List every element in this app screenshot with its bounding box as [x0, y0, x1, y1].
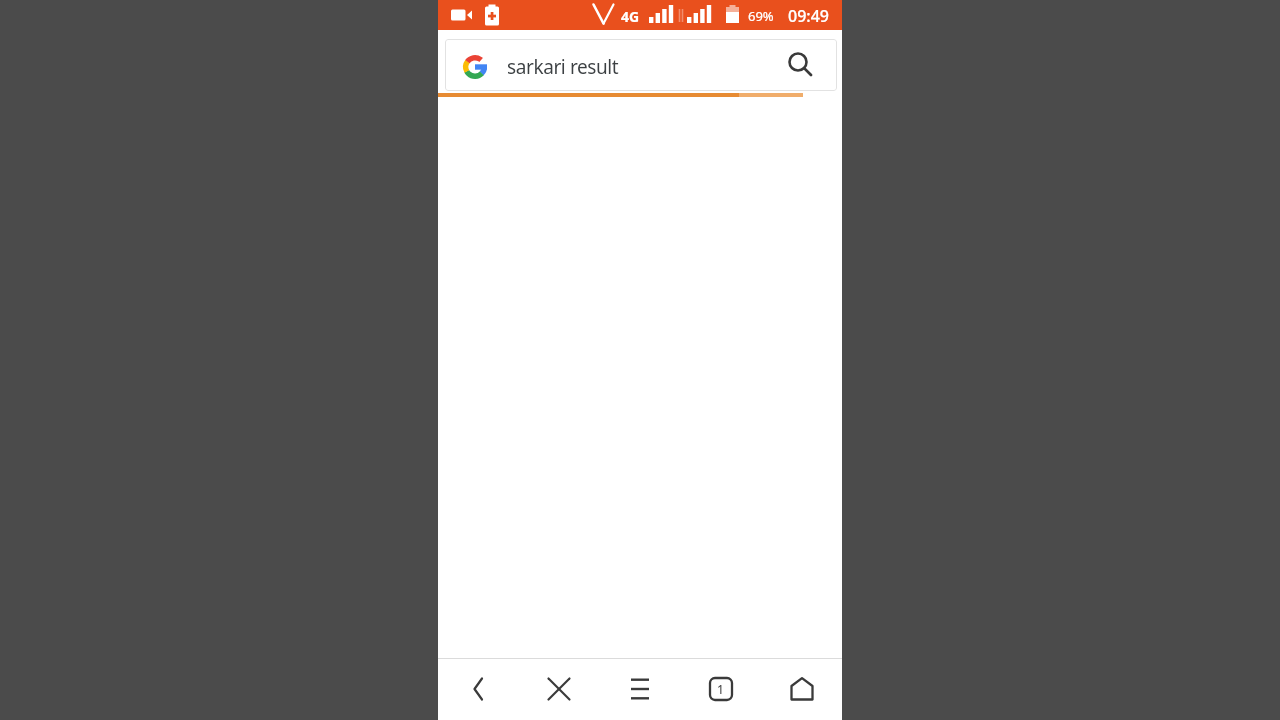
staticText: 4G [621, 7, 640, 26]
staticText: 1 [717, 681, 724, 697]
staticText: 69% [748, 7, 774, 25]
button[interactable] [761, 659, 842, 720]
button[interactable] [438, 659, 518, 720]
button[interactable] [599, 659, 680, 720]
button[interactable] [518, 659, 599, 720]
button[interactable]: sarkari result [445, 39, 837, 91]
staticText: 09:49 [788, 5, 829, 27]
button[interactable]: 1 [680, 659, 761, 720]
staticText: sarkari result [507, 54, 619, 80]
